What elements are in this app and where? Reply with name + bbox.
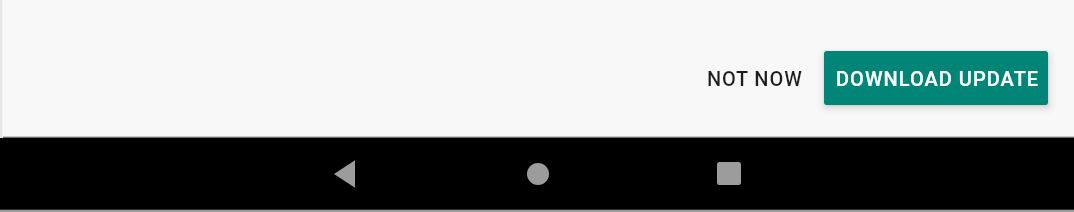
button[interactable]: NOT NOW — [694, 55, 816, 102]
button[interactable]: Back — [315, 138, 375, 209]
button[interactable]: DOWNLOAD UPDATE — [824, 51, 1048, 105]
staticText: DOWNLOAD UPDATE — [836, 67, 1040, 90]
button[interactable]: Recent apps — [699, 138, 759, 209]
staticText: NOT NOW — [707, 67, 803, 90]
button[interactable]: Home — [508, 138, 568, 209]
